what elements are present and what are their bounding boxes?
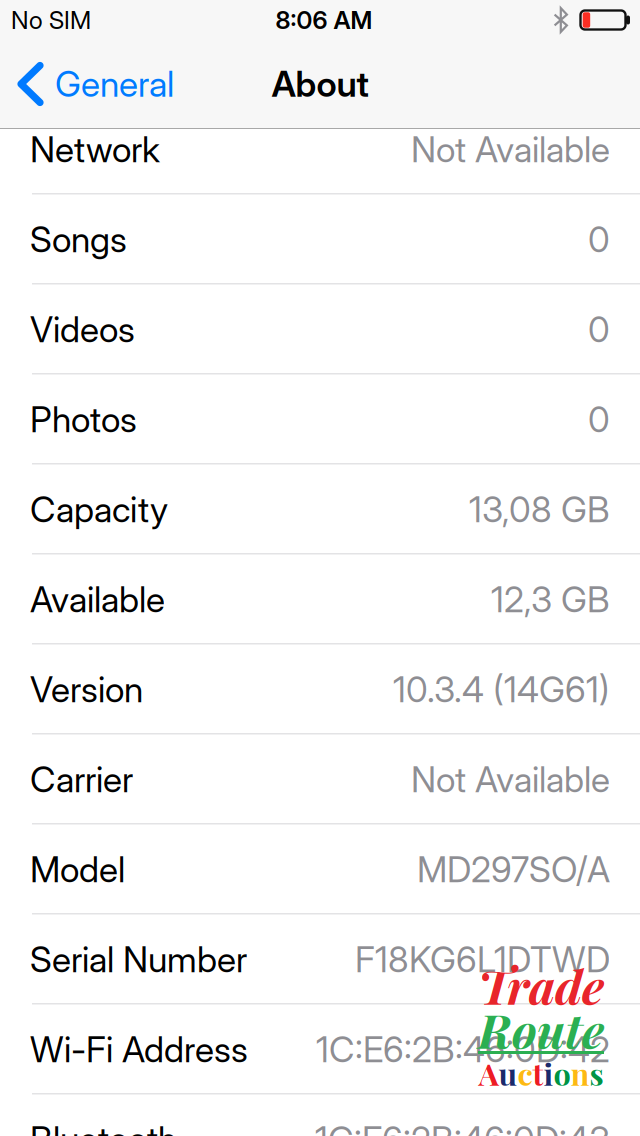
staticText: Capacity [30, 488, 168, 531]
staticText: Network [30, 128, 160, 171]
staticText: 0 [588, 218, 610, 261]
staticText: Carrier [30, 758, 133, 801]
staticText: n [570, 1053, 589, 1093]
staticText: 1C:E6:2B:46:0D:42 [316, 1028, 610, 1071]
staticText: Photos [30, 398, 137, 441]
staticText: General [55, 63, 174, 105]
staticText: Serial Number [30, 938, 247, 981]
staticText: 0 [588, 308, 610, 351]
button[interactable]: Photos [0, 374, 640, 464]
staticText: A [478, 1053, 498, 1093]
button[interactable]: Carrier [0, 734, 640, 824]
staticText: Not Available [411, 128, 610, 171]
staticText: Version [30, 668, 143, 711]
staticText: i [543, 1053, 553, 1093]
staticText: Available [30, 578, 165, 621]
button[interactable]: Serial Number [0, 914, 640, 1004]
staticText: No SIM [11, 5, 91, 35]
button[interactable]: Videos [0, 284, 640, 374]
staticText: Videos [30, 308, 135, 351]
staticText: Trade [478, 953, 604, 1017]
staticText: s [589, 1053, 603, 1093]
button[interactable]: General [0, 40, 190, 128]
staticText: 0 [588, 398, 610, 441]
button[interactable]: Wi-Fi Address [0, 1004, 640, 1094]
button[interactable]: Version [0, 644, 640, 734]
staticText: Bluetooth [30, 1118, 177, 1136]
staticText: o [553, 1053, 570, 1093]
staticText: 1C:E6:2B:46:0D:43 [315, 1118, 610, 1136]
staticText: Wi-Fi Address [30, 1028, 248, 1071]
staticText: Model [30, 848, 125, 891]
staticText: Route [478, 997, 604, 1061]
staticText: Not Available [411, 758, 610, 801]
button[interactable]: Capacity [0, 464, 640, 554]
staticText: u [498, 1053, 517, 1093]
staticText: F18KG6L1DTWD [355, 938, 610, 981]
staticText: MD297SO/A [417, 848, 610, 891]
button[interactable]: Network [0, 104, 640, 194]
staticText: 10.3.4 (14G61) [393, 668, 610, 711]
button[interactable]: Model [0, 824, 640, 914]
button[interactable]: Available [0, 554, 640, 644]
button[interactable]: Bluetooth [0, 1094, 640, 1136]
staticText: 8:06 AM [275, 5, 372, 35]
staticText: t [532, 1053, 543, 1093]
button[interactable]: Songs [0, 194, 640, 284]
staticText: Songs [30, 218, 127, 261]
staticText: c [517, 1053, 532, 1093]
staticText: About [271, 63, 368, 105]
staticText: 12,3 GB [491, 578, 610, 621]
staticText: 13,08 GB [469, 488, 610, 531]
